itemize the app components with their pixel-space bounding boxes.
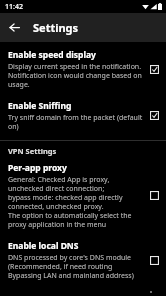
button[interactable]: Enable local DNS: [0, 237, 166, 288]
staticText: General: Checked App is proxy, unchecked…: [8, 175, 144, 229]
staticText: VPN Settings: [8, 146, 57, 156]
button[interactable]: Enable fake DNS: [0, 288, 166, 296]
staticText: Enable Sniffing: [8, 100, 72, 112]
button[interactable]: Enable speed display: [0, 46, 166, 97]
staticText: Enable speed display: [8, 49, 96, 61]
staticText: Per-app proxy: [8, 162, 67, 174]
button[interactable]: Enable Sniffing: [0, 97, 166, 137]
staticText: Display current speed in the notificatio…: [8, 62, 144, 89]
staticText: Enable local DNS: [8, 240, 79, 252]
button[interactable]: Back: [0, 13, 29, 42]
button[interactable]: Per-app proxy: [0, 161, 166, 237]
staticText: 11:42: [5, 2, 23, 12]
staticText: DNS processed by core's DNS module (Reco…: [8, 253, 144, 280]
staticText: Settings: [33, 20, 79, 35]
staticText: Try sniff domain from the packet (defaul…: [8, 113, 144, 131]
